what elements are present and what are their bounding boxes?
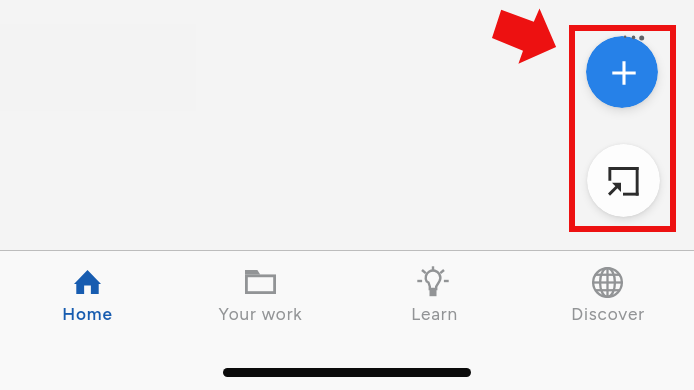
button[interactable]: Discover	[520, 251, 694, 390]
staticText: Home	[62, 304, 113, 325]
staticText: Your work	[218, 304, 303, 325]
staticText: Learn	[411, 304, 458, 325]
button[interactable]: Home	[0, 251, 173, 390]
button[interactable]: Learn	[346, 251, 520, 390]
button[interactable]: Expand	[587, 144, 660, 217]
button[interactable]: Your work	[173, 251, 346, 390]
button[interactable]: Create new	[586, 36, 658, 108]
staticText: Discover	[571, 304, 645, 325]
